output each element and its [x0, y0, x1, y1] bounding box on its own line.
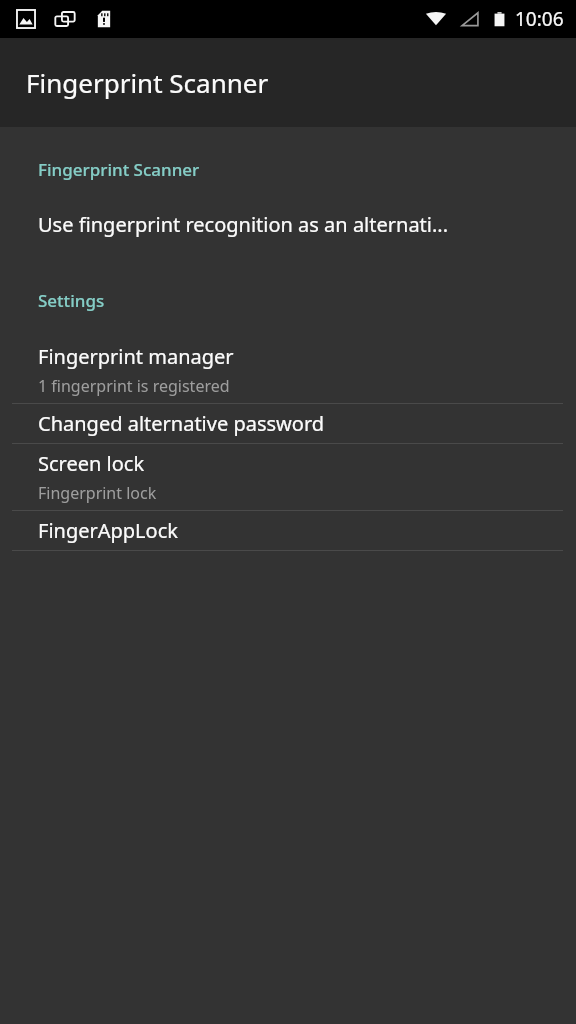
staticText: Fingerprint lock	[38, 482, 157, 504]
button[interactable]: FingerAppLock	[0, 511, 576, 550]
staticText: Fingerprint Scanner	[26, 65, 269, 100]
staticText: Settings	[38, 289, 105, 312]
staticText: 1 fingerprint is registered	[38, 375, 230, 397]
staticText: Fingerprint Scanner	[38, 158, 200, 181]
staticText: Fingerprint manager	[38, 343, 234, 370]
staticText: Changed alternative password	[38, 410, 325, 437]
button[interactable]: Screen lock	[0, 444, 576, 510]
button[interactable]: Changed alternative password	[0, 404, 576, 443]
staticText: Screen lock	[38, 450, 145, 477]
button[interactable]: Use fingerprint recognition as an altern…	[0, 207, 576, 242]
button[interactable]: Fingerprint manager	[0, 337, 576, 403]
staticText: FingerAppLock	[38, 517, 178, 544]
staticText: 10:06	[515, 6, 564, 32]
staticText: Use fingerprint recognition as an altern…	[38, 211, 449, 238]
